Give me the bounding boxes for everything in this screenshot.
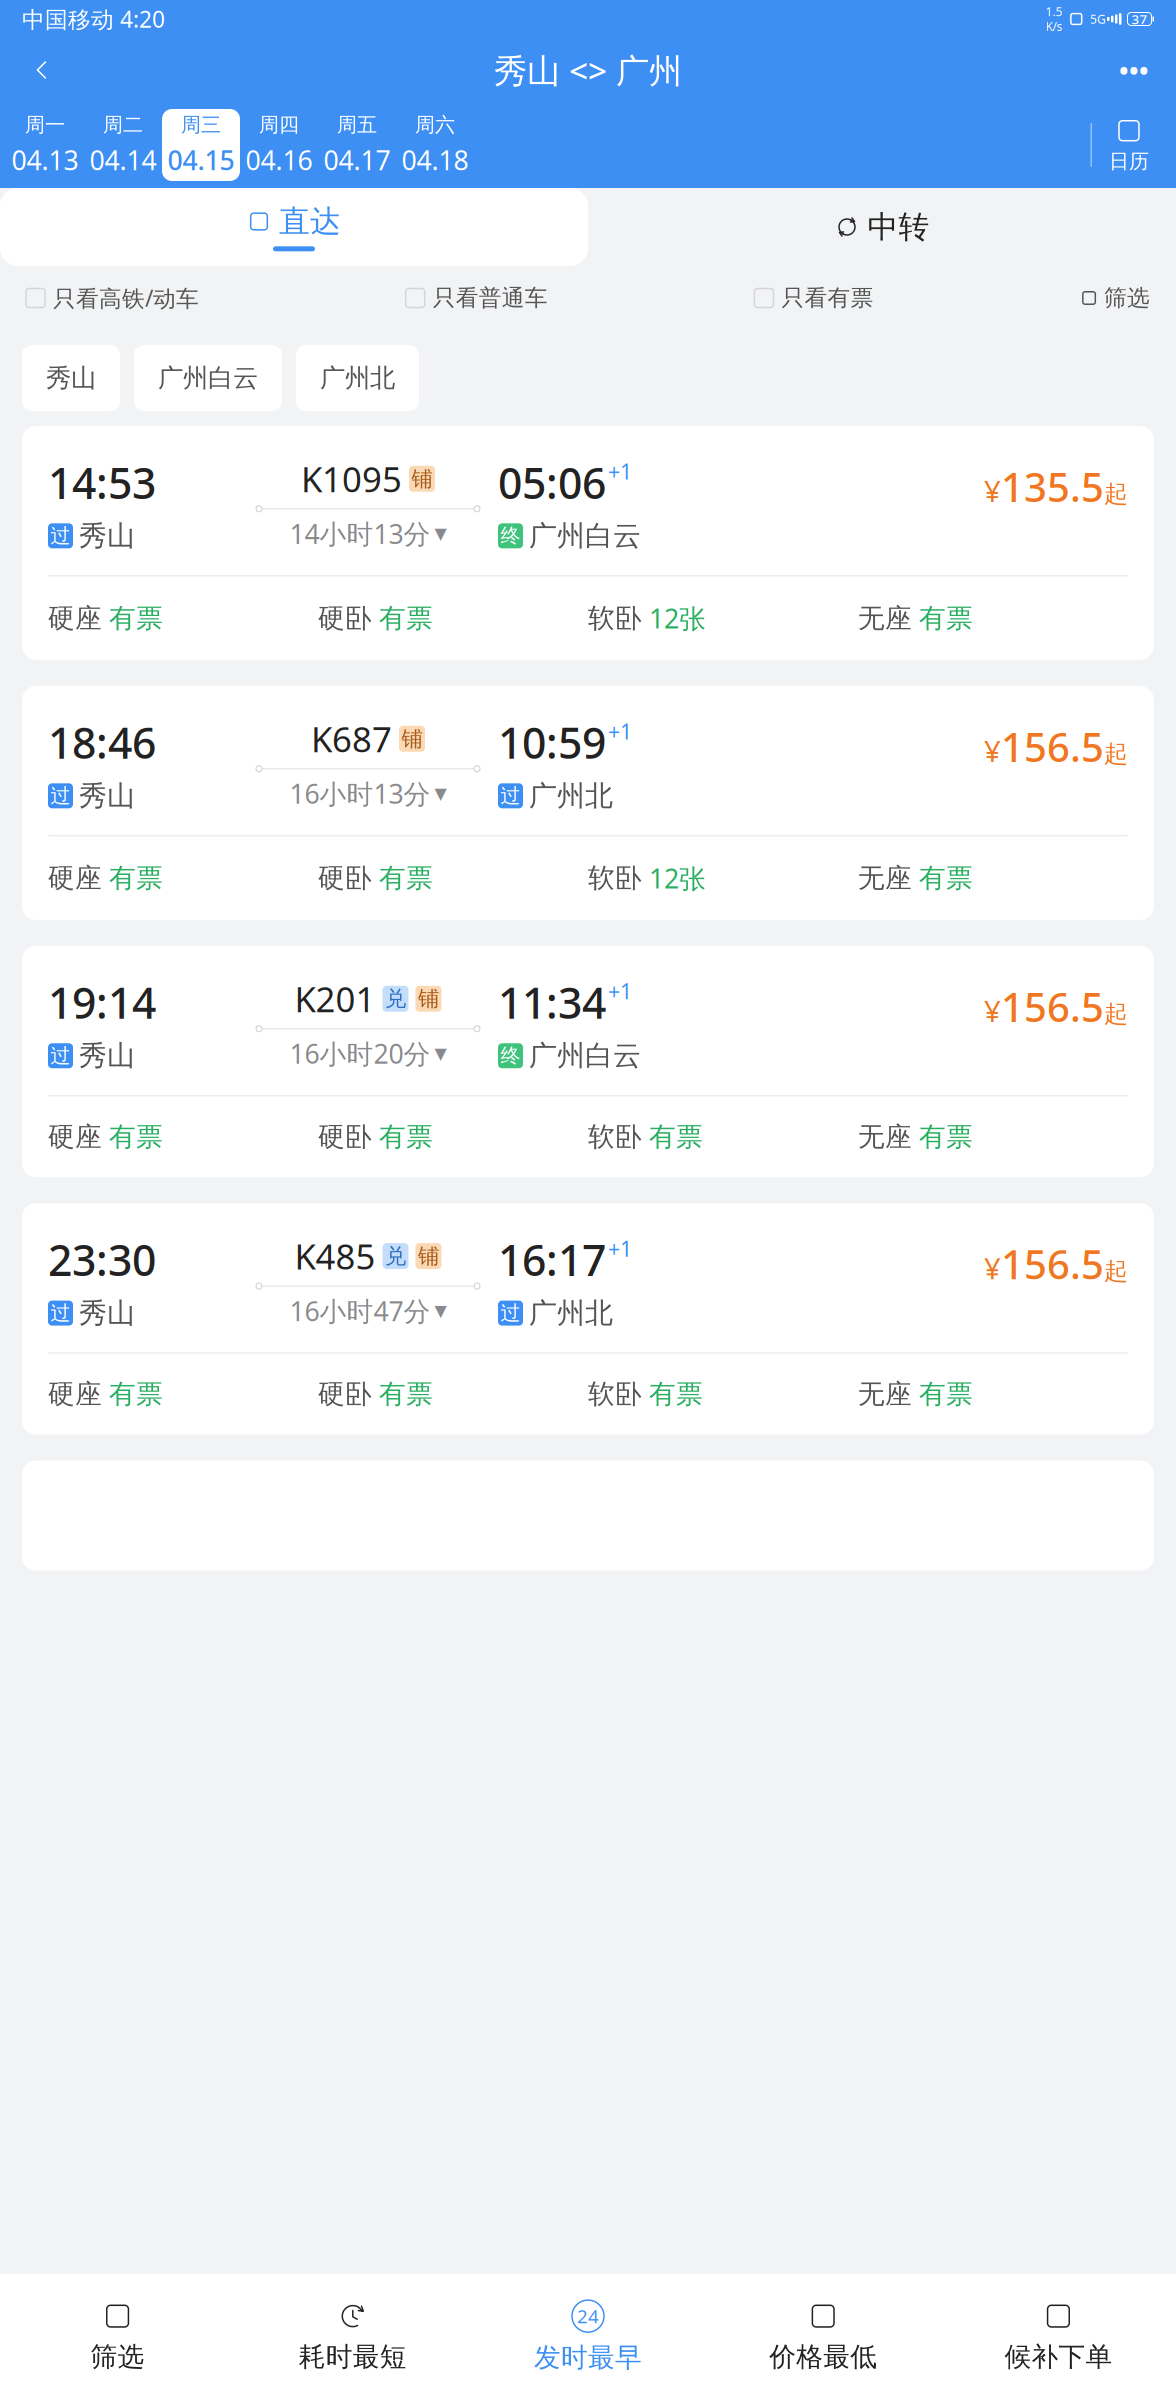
staticText: K1095 bbox=[301, 456, 402, 502]
staticText: 秀山 bbox=[79, 1039, 135, 1073]
staticText: 05:06 bbox=[498, 454, 606, 511]
button[interactable]: 19:14 bbox=[22, 946, 1154, 1177]
staticText: 135.5 bbox=[1001, 460, 1104, 513]
staticText: 秀山 bbox=[46, 362, 96, 393]
button[interactable]: 中转 bbox=[588, 188, 1176, 266]
button[interactable]: 周一 bbox=[6, 109, 84, 181]
button[interactable]: 价格最低 bbox=[706, 2301, 941, 2373]
staticText: 硬座 bbox=[48, 602, 102, 635]
staticText: 有票 bbox=[919, 862, 973, 895]
staticText: K687 bbox=[311, 716, 392, 762]
button[interactable]: 24 bbox=[470, 2300, 706, 2374]
button[interactable]: 更多 bbox=[1106, 44, 1162, 96]
staticText: 中转 bbox=[867, 208, 929, 246]
button[interactable]: 只看高铁/动车 bbox=[26, 283, 199, 313]
staticText: ▼ bbox=[434, 1302, 446, 1320]
staticText: 无座 bbox=[858, 602, 912, 635]
staticText: 起 bbox=[1104, 1257, 1128, 1286]
staticText: 16小时13分 bbox=[289, 776, 430, 811]
staticText: ▼ bbox=[434, 1044, 446, 1063]
staticText: 有票 bbox=[109, 1378, 163, 1411]
staticText: 秀山 bbox=[79, 779, 135, 813]
staticText: 周三 bbox=[181, 112, 221, 137]
staticText: 广州北 bbox=[320, 362, 395, 393]
staticText: 04.14 bbox=[89, 142, 156, 177]
button[interactable]: 返回 bbox=[14, 44, 70, 96]
staticText: 周六 bbox=[415, 112, 455, 137]
button[interactable]: 周五 bbox=[318, 109, 396, 181]
staticText: +1 bbox=[608, 1234, 632, 1262]
staticText: 过 bbox=[50, 524, 70, 548]
staticText: 广州白云 bbox=[158, 362, 258, 393]
button[interactable]: 耗时最短 bbox=[235, 2301, 470, 2373]
button[interactable]: 14:53 bbox=[22, 426, 1154, 660]
button[interactable]: 周四 bbox=[240, 109, 318, 181]
button[interactable]: 只看普通车 bbox=[406, 284, 548, 312]
staticText: 硬座 bbox=[48, 862, 102, 895]
staticText: ¥ bbox=[984, 1248, 1001, 1287]
staticText: 硬座 bbox=[48, 1120, 102, 1153]
staticText: 19:14 bbox=[48, 974, 156, 1031]
staticText: 有票 bbox=[379, 602, 433, 635]
staticText: 12张 bbox=[649, 860, 706, 896]
staticText: 铺 bbox=[411, 466, 432, 492]
staticText: 过 bbox=[50, 1301, 70, 1325]
staticText: 有票 bbox=[109, 602, 163, 635]
staticText: 候补下单 bbox=[1004, 2341, 1112, 2373]
staticText: 14小时13分 bbox=[289, 516, 430, 551]
staticText: 铺 bbox=[418, 1243, 439, 1269]
staticText: 18:46 bbox=[48, 714, 156, 771]
staticText: 铺 bbox=[418, 986, 439, 1012]
staticText: 有票 bbox=[649, 1378, 703, 1411]
staticText: 156.5 bbox=[1001, 1237, 1104, 1290]
staticText: 周五 bbox=[337, 112, 377, 137]
staticText: 广州白云 bbox=[529, 519, 641, 553]
button[interactable]: 筛选 bbox=[0, 2301, 235, 2373]
staticText: ▼ bbox=[434, 524, 446, 543]
button[interactable]: 只看有票 bbox=[754, 284, 873, 312]
staticText: 无座 bbox=[858, 1120, 912, 1153]
button[interactable]: 18:46 bbox=[22, 686, 1154, 920]
button[interactable]: 周六 bbox=[396, 109, 474, 181]
staticText: 5G bbox=[1090, 11, 1106, 27]
staticText: 无座 bbox=[858, 862, 912, 895]
button[interactable]: 周二 bbox=[84, 109, 162, 181]
staticText: 24 bbox=[577, 2304, 599, 2328]
button[interactable]: 筛选 bbox=[1080, 284, 1150, 312]
staticText: 无座 bbox=[858, 1378, 912, 1411]
staticText: 有票 bbox=[379, 1378, 433, 1411]
staticText: 硬卧 bbox=[318, 862, 372, 895]
staticText: 10:59 bbox=[498, 714, 606, 771]
staticText: ▼ bbox=[434, 784, 446, 803]
button[interactable]: 23:30 bbox=[22, 1203, 1154, 1434]
staticText: 有票 bbox=[919, 602, 973, 635]
button[interactable]: 日历 bbox=[1092, 109, 1166, 181]
staticText: 日历 bbox=[1109, 149, 1149, 174]
button[interactable]: 广州北 bbox=[296, 345, 419, 411]
staticText: 直达 bbox=[279, 203, 341, 240]
staticText: 14:53 bbox=[48, 454, 156, 511]
button[interactable]: 周三 bbox=[162, 109, 240, 181]
staticText: +1 bbox=[608, 717, 632, 745]
staticText: 硬座 bbox=[48, 1378, 102, 1411]
staticText: 秀山 bbox=[79, 519, 135, 553]
staticText: 过 bbox=[50, 783, 70, 808]
button[interactable]: 直达 bbox=[0, 188, 588, 266]
staticText: 有票 bbox=[919, 1378, 973, 1411]
staticText: 终 bbox=[500, 1043, 520, 1068]
button[interactable]: 广州白云 bbox=[134, 345, 282, 411]
staticText: 11:34 bbox=[498, 974, 606, 1031]
staticText: K201 bbox=[294, 976, 375, 1022]
button[interactable]: 秀山 bbox=[22, 345, 120, 411]
staticText: 秀山 <> 广州 bbox=[494, 48, 682, 92]
staticText: 广州白云 bbox=[529, 1039, 641, 1073]
staticText: 16小时47分 bbox=[289, 1293, 430, 1328]
staticText: 04.15 bbox=[167, 142, 234, 177]
staticText: 04.16 bbox=[245, 142, 312, 177]
button[interactable]: 候补下单 bbox=[941, 2301, 1176, 2373]
staticText: 有票 bbox=[649, 1120, 703, 1153]
staticText: 软卧 bbox=[588, 602, 642, 635]
staticText: 只看高铁/动车 bbox=[53, 283, 199, 313]
staticText: 周一 bbox=[25, 112, 65, 137]
staticText: 有票 bbox=[109, 1120, 163, 1153]
